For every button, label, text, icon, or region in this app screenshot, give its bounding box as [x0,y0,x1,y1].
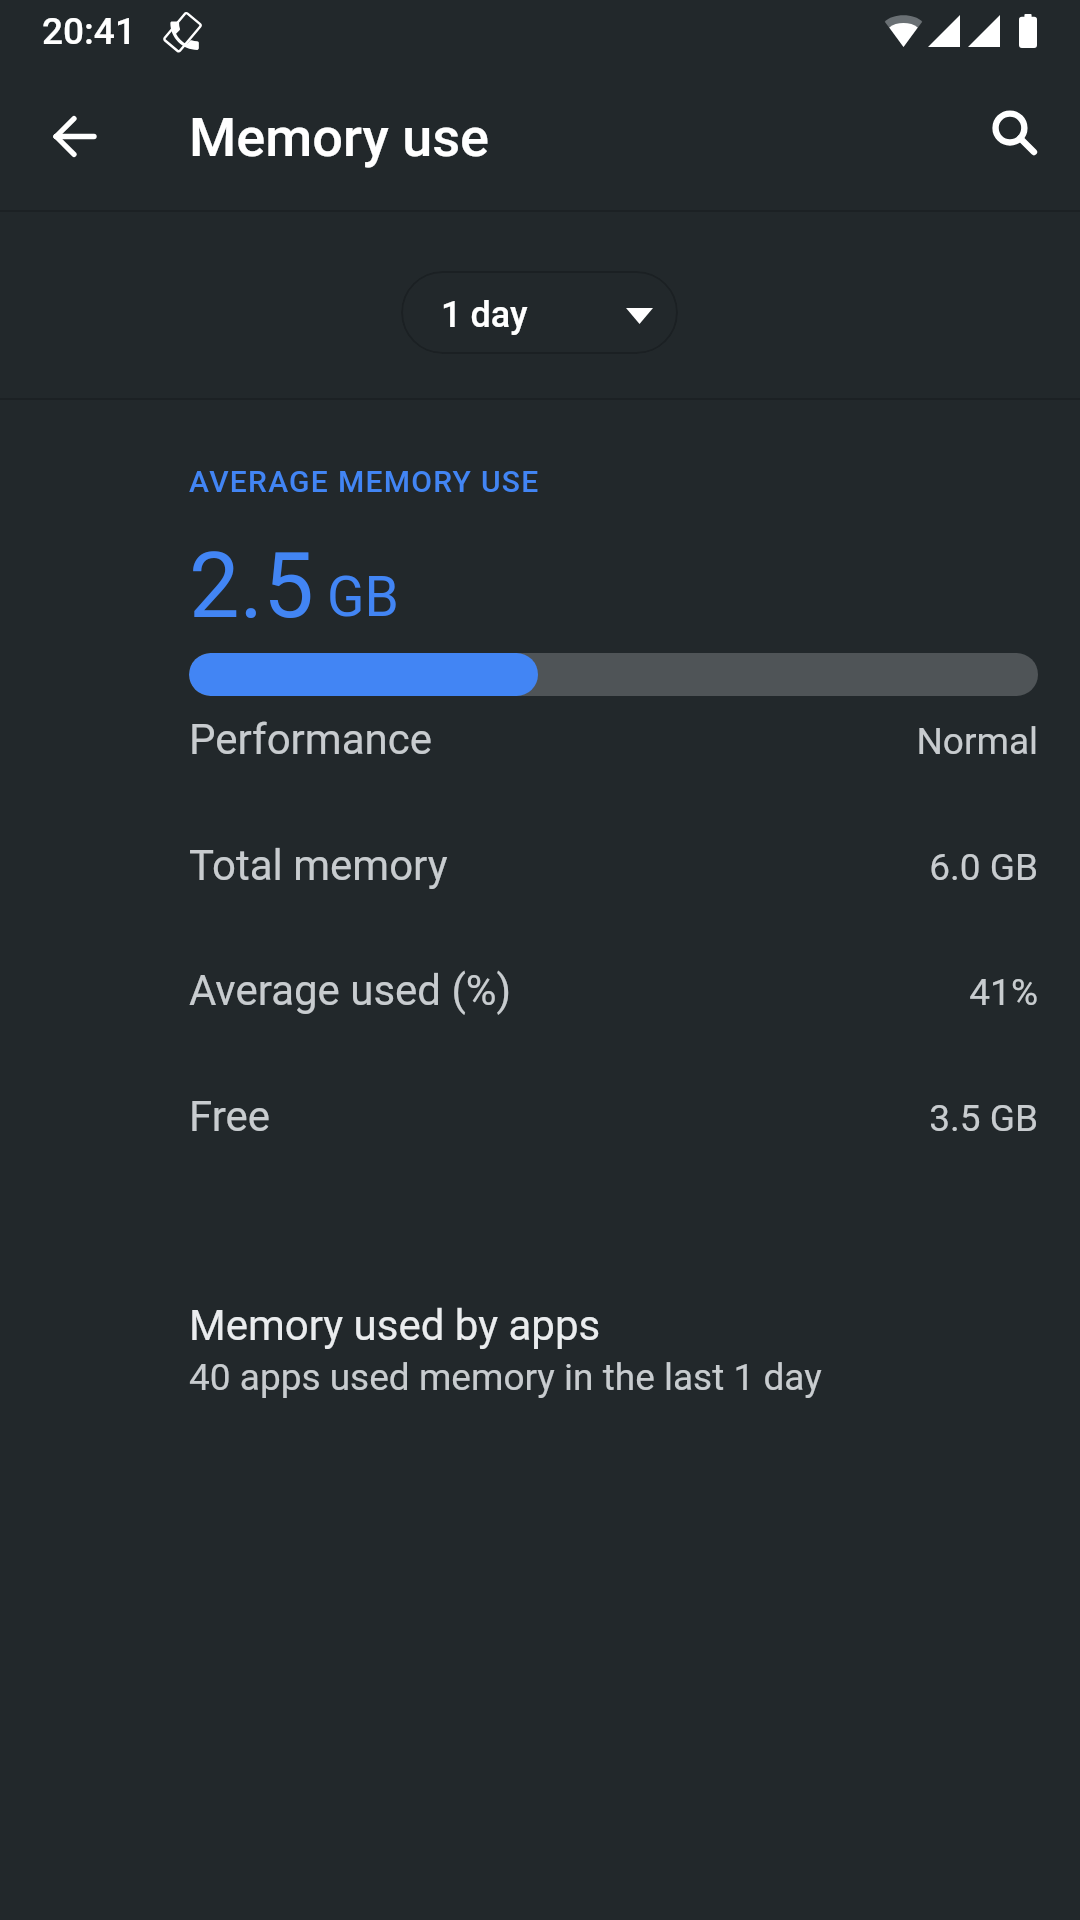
staticText: AVERAGE MEMORY USE [189,464,540,499]
staticText: Memory used by apps [189,1301,601,1350]
button[interactable]: 1 day [401,271,678,354]
staticText: Memory use [189,106,490,169]
button[interactable]: Total memory [0,837,1080,962]
staticText: Normal [0,720,1038,763]
staticText: Total memory [189,841,448,890]
staticText: 40 apps used memory in the last 1 day [189,1356,822,1399]
staticText: GB [327,565,399,629]
staticText: Performance [189,715,432,764]
staticText: Free [189,1092,271,1141]
button[interactable]: Free [0,1088,1080,1213]
staticText: Average used (%) [189,966,512,1015]
staticText: 20:41 [42,10,136,53]
button[interactable]: Search [967,89,1063,185]
staticText: 3.5 GB [0,1097,1038,1140]
staticText: 6.0 GB [0,846,1038,889]
button[interactable]: Average used (%) [0,962,1080,1087]
button[interactable]: Back [26,89,122,185]
staticText: 1 day [441,294,528,336]
staticText: 2.5 [189,534,314,639]
button[interactable]: Performance [0,711,1080,836]
button[interactable]: Memory used by apps [0,1286,1080,1426]
staticText: 41% [0,971,1038,1014]
